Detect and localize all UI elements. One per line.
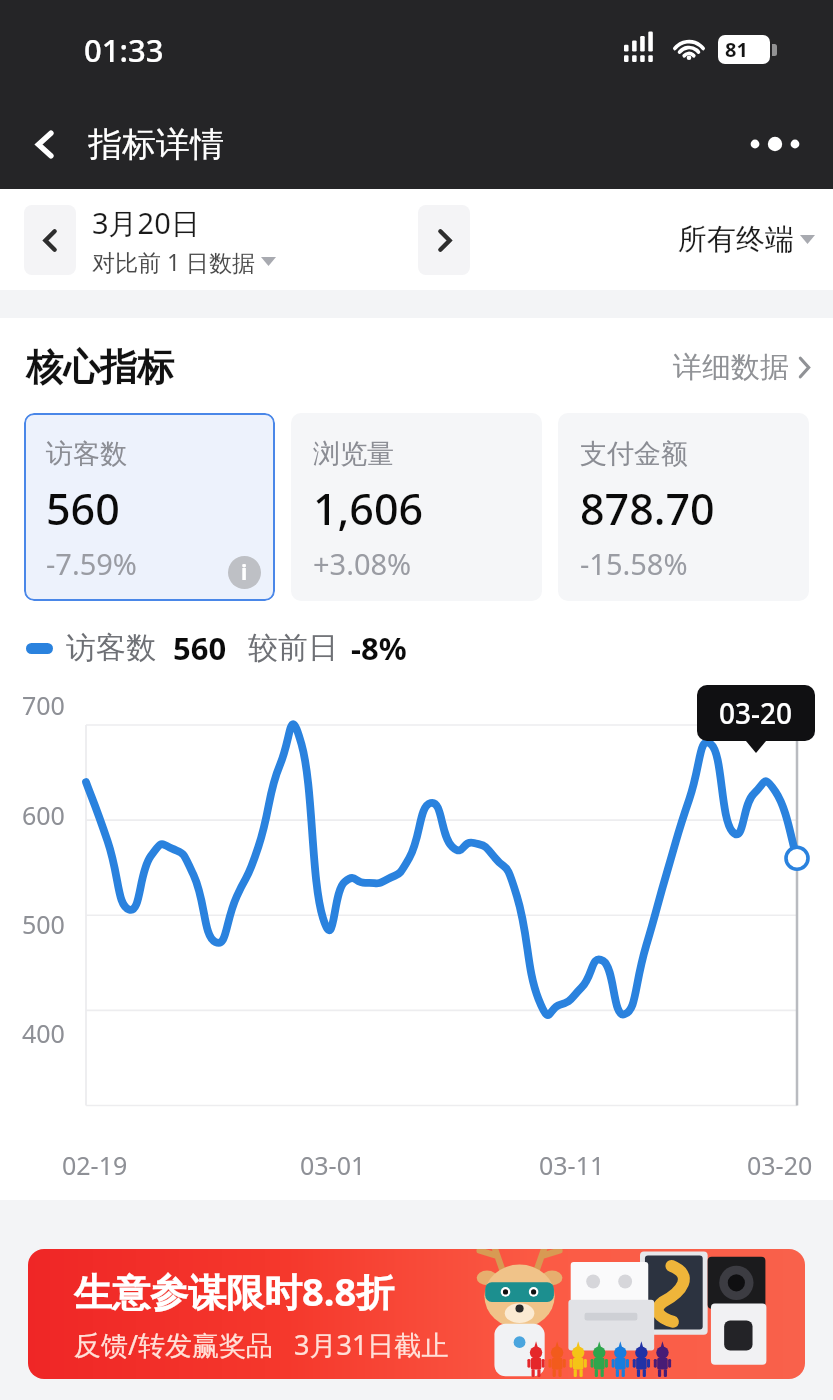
staticText: -15.58% [580, 544, 688, 583]
staticText: 560 [173, 627, 227, 669]
staticText: 访客数 [66, 629, 156, 667]
button[interactable]: 生意参谋限时8.8折 [28, 1249, 805, 1379]
staticText: +3.08% [313, 544, 412, 583]
staticText: 03-01 [300, 1148, 366, 1182]
staticText: 详细数据 [673, 349, 789, 386]
staticText: 03-11 [539, 1148, 605, 1182]
staticText: 3月20日 [92, 203, 200, 243]
staticText: 浏览量 [313, 437, 394, 471]
staticText: 700 [22, 688, 65, 722]
staticText: 400 [22, 1016, 65, 1050]
button[interactable]: 浏览量 [291, 413, 542, 601]
button[interactable]: Info [228, 556, 261, 589]
staticText: -7.59% [46, 544, 137, 583]
staticText: i [241, 558, 248, 587]
staticText: 指标详情 [88, 123, 224, 166]
button[interactable]: 详细数据 [673, 349, 811, 386]
staticText: 878.70 [580, 479, 715, 538]
staticText: -8% [351, 627, 407, 669]
staticText: 600 [22, 798, 65, 832]
staticText: 支付金额 [580, 437, 688, 471]
staticText: 03-20 [747, 1148, 813, 1182]
button[interactable]: Previous day [24, 205, 76, 275]
staticText: 03-20 [719, 694, 793, 732]
staticText: 01:33 [84, 29, 164, 71]
staticText: 560 [46, 479, 120, 538]
button[interactable]: 3月20日 [92, 203, 276, 277]
button[interactable]: 支付金额 [558, 413, 809, 601]
staticText: 反馈/转发赢奖品 [74, 1326, 274, 1363]
button[interactable]: Next day [418, 205, 470, 275]
button[interactable]: 所有终端 [678, 221, 815, 258]
staticText: 对比前 1 日数据 [92, 246, 256, 277]
button[interactable]: More options [743, 118, 807, 170]
button[interactable]: Back [16, 115, 74, 173]
staticText: 3月31日截止 [294, 1326, 449, 1363]
button[interactable]: 访客数 [24, 413, 275, 601]
staticText: 较前日 [248, 629, 338, 667]
staticText: 500 [22, 907, 65, 941]
staticText: 02-19 [62, 1148, 128, 1182]
staticText: 生意参谋限时8.8折 [74, 1265, 395, 1317]
staticText: 81 [725, 36, 748, 63]
staticText: 所有终端 [678, 221, 794, 258]
staticText: 核心指标 [26, 344, 174, 391]
staticText: 访客数 [46, 437, 127, 471]
staticText: 1,606 [313, 479, 424, 538]
